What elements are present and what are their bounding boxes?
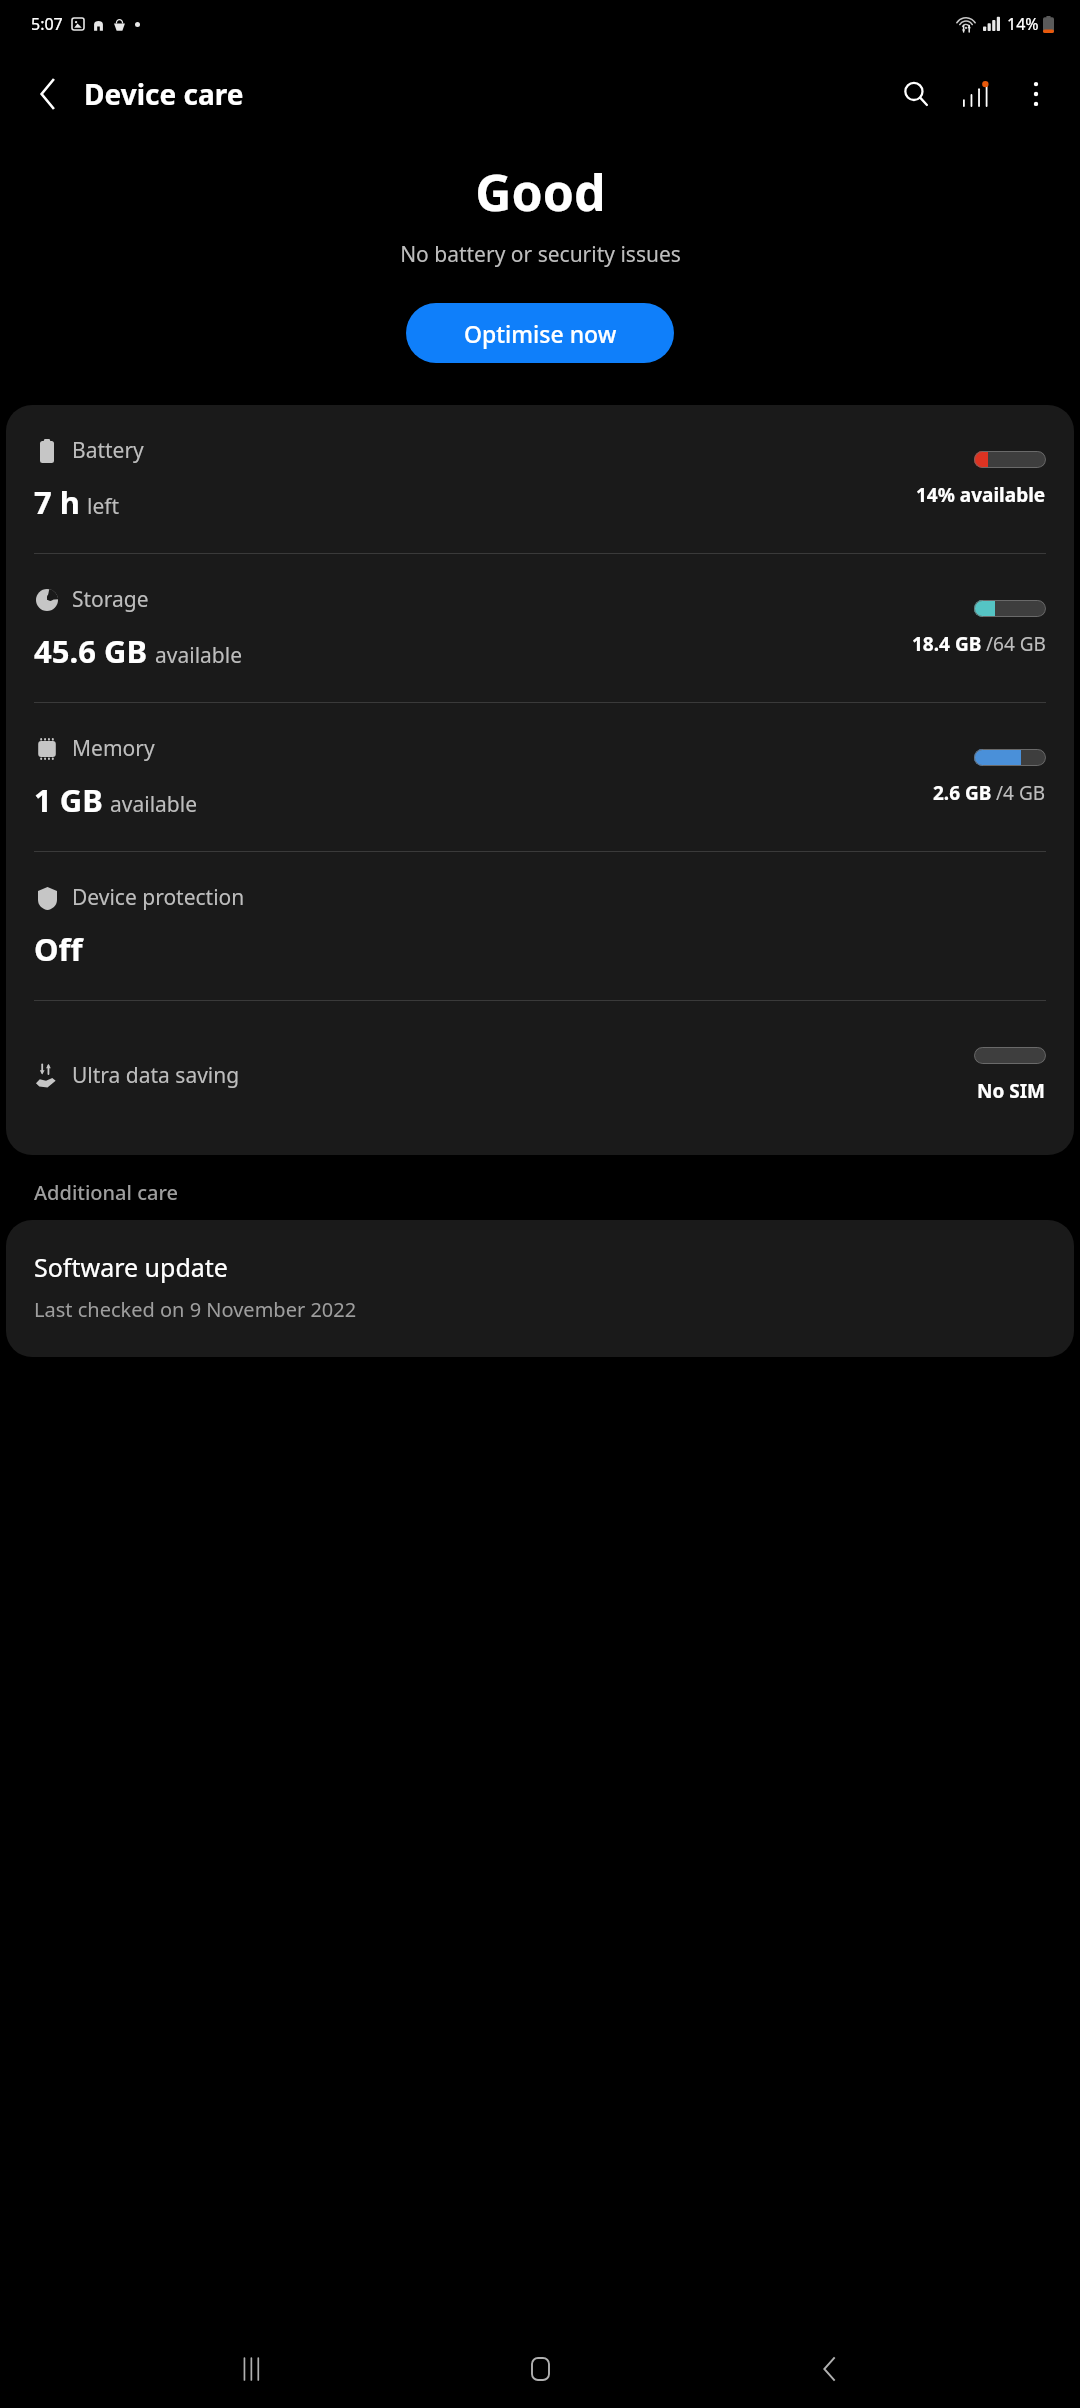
button[interactable]: Search bbox=[888, 66, 944, 122]
staticText: 2.6 GB bbox=[933, 780, 992, 806]
staticText: 18.4 GB bbox=[912, 631, 982, 657]
staticText: Device care bbox=[84, 75, 244, 113]
button[interactable]: Ultra data saving bbox=[6, 1001, 1074, 1149]
staticText: available bbox=[155, 641, 243, 670]
staticText: 1 GB bbox=[34, 779, 103, 821]
staticText: /4 GB bbox=[996, 780, 1046, 806]
staticText: Optimise now bbox=[464, 318, 617, 349]
staticText: No battery or security issues bbox=[400, 240, 681, 269]
button[interactable]: More options bbox=[1008, 66, 1064, 122]
button[interactable]: Software update bbox=[6, 1220, 1074, 1357]
staticText: Last checked on 9 November 2022 bbox=[34, 1296, 357, 1323]
staticText: Memory bbox=[72, 734, 155, 763]
button[interactable]: Optimise now bbox=[406, 303, 674, 363]
button[interactable]: Recent apps bbox=[215, 2332, 289, 2406]
staticText: 5:07 bbox=[31, 13, 63, 35]
button[interactable]: Battery bbox=[6, 405, 1074, 553]
button[interactable]: Home bbox=[503, 2332, 577, 2406]
staticText: 14% bbox=[1007, 13, 1039, 35]
staticText: Storage bbox=[72, 585, 149, 614]
staticText: Ultra data saving bbox=[72, 1061, 240, 1090]
staticText: 14% available bbox=[916, 482, 1046, 508]
staticText: Off bbox=[34, 928, 83, 970]
button[interactable]: Usage statistics bbox=[948, 66, 1004, 122]
staticText: /64 GB bbox=[986, 631, 1046, 657]
staticText: 45.6 GB bbox=[34, 630, 148, 672]
button[interactable]: Back bbox=[792, 2332, 866, 2406]
staticText: Battery bbox=[72, 436, 144, 465]
staticText: Device protection bbox=[72, 883, 245, 912]
button[interactable]: Memory bbox=[6, 703, 1074, 851]
staticText: No SIM bbox=[977, 1078, 1046, 1104]
staticText: available bbox=[110, 790, 198, 819]
button[interactable]: Device protection bbox=[6, 852, 1074, 1000]
button[interactable]: Storage bbox=[6, 554, 1074, 702]
staticText: Good bbox=[475, 158, 606, 226]
staticText: Additional care bbox=[34, 1179, 178, 1206]
button[interactable]: Back bbox=[20, 66, 76, 122]
staticText: 7 h bbox=[34, 481, 80, 523]
staticText: left bbox=[87, 492, 120, 521]
staticText: Software update bbox=[34, 1250, 228, 1284]
